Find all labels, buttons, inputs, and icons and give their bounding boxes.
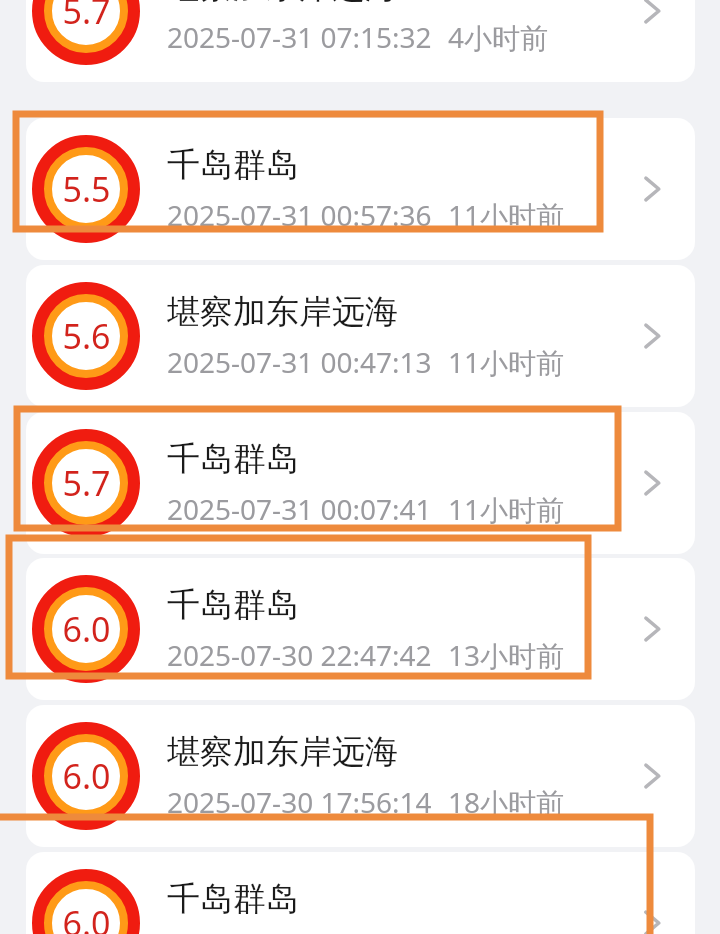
staticText: 2025-07-30 17:56:14	[167, 783, 432, 821]
button[interactable]: Details	[617, 0, 687, 46]
staticText: 6.0	[62, 753, 111, 799]
staticText: 5.5	[62, 166, 111, 212]
staticText: 2025-07-31 00:47:13	[167, 343, 432, 381]
button[interactable]: 5.5	[26, 118, 695, 260]
staticText: 5.7	[62, 460, 111, 506]
staticText: 11小时前	[448, 343, 565, 381]
staticText: 2025-07-31 00:57:36	[167, 196, 432, 234]
staticText: 2025-07-31 07:15:32	[167, 18, 432, 56]
button[interactable]: Details	[617, 888, 687, 934]
staticText: 2025-07-30 22:47:42	[167, 636, 432, 674]
staticText: 6.0	[62, 606, 111, 652]
staticText: 4小时前	[448, 18, 549, 56]
button[interactable]: 5.6	[26, 265, 695, 407]
staticText: 2025-07-31 00:07:41	[167, 490, 432, 528]
staticText: 千岛群岛	[167, 584, 299, 626]
staticText: 千岛群岛	[167, 878, 299, 920]
staticText: 千岛群岛	[167, 144, 299, 186]
button[interactable]: Details	[617, 301, 687, 371]
button[interactable]: 5.7	[26, 0, 695, 82]
staticText: 千岛群岛	[167, 438, 299, 480]
staticText: 11小时前	[448, 196, 565, 234]
staticText: 13小时前	[448, 636, 565, 674]
button[interactable]: 6.0	[26, 852, 695, 934]
staticText: 5.7	[62, 0, 111, 34]
staticText: 6.0	[62, 900, 111, 934]
staticText: 堪察加东岸远海	[167, 731, 398, 773]
staticText: 堪察加东岸远海	[167, 0, 398, 8]
staticText: 堪察加东岸远海	[167, 291, 398, 333]
button[interactable]: Details	[617, 594, 687, 664]
staticText: 5.6	[62, 313, 111, 359]
staticText: 18小时前	[448, 783, 565, 821]
button[interactable]: 6.0	[26, 705, 695, 847]
button[interactable]: Details	[617, 741, 687, 811]
button[interactable]: Details	[617, 448, 687, 518]
button[interactable]: 6.0	[26, 558, 695, 700]
button[interactable]: 5.7	[26, 412, 695, 554]
button[interactable]: Details	[617, 154, 687, 224]
staticText: 11小时前	[448, 490, 565, 528]
